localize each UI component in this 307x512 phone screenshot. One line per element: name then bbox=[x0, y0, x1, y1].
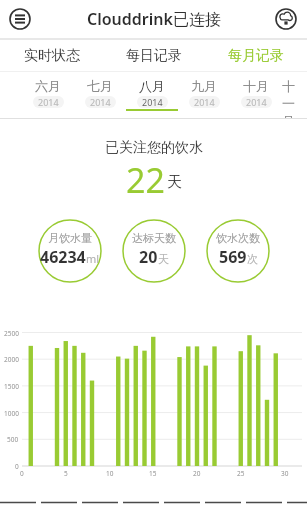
staticText: 0 bbox=[15, 462, 19, 471]
staticText: 10 bbox=[106, 469, 114, 478]
staticText: ml bbox=[86, 251, 100, 266]
staticText: 达标天数 bbox=[132, 231, 176, 245]
staticText: 15 bbox=[149, 469, 157, 478]
staticText: 2000 bbox=[4, 355, 19, 364]
button[interactable] bbox=[9, 8, 31, 30]
button[interactable]: 九月 bbox=[178, 72, 230, 109]
staticText: 每月记录 bbox=[228, 47, 284, 65]
staticText: 八月 bbox=[139, 78, 165, 94]
staticText: 每日记录 bbox=[126, 47, 182, 65]
staticText: 月饮水量 bbox=[48, 231, 92, 245]
staticText: 30 bbox=[281, 469, 289, 478]
staticText: 2500 bbox=[4, 329, 19, 338]
staticText: 1500 bbox=[4, 382, 19, 391]
staticText: Clouddrink已连接 bbox=[87, 8, 221, 30]
button[interactable]: 六月 bbox=[22, 72, 74, 109]
staticText: 46234 bbox=[40, 246, 86, 268]
staticText: 十月 bbox=[243, 78, 269, 94]
button[interactable] bbox=[275, 8, 297, 30]
staticText: 饮水次数 bbox=[216, 231, 260, 245]
button[interactable]: 八月 bbox=[126, 72, 178, 111]
staticText: 六月 bbox=[35, 78, 61, 94]
button[interactable]: 每日记录 bbox=[103, 40, 205, 71]
button[interactable]: 十月 bbox=[230, 72, 282, 109]
button[interactable]: 饮水次数 bbox=[206, 219, 270, 283]
button[interactable]: 十一月 bbox=[282, 72, 307, 118]
staticText: 2014 bbox=[142, 96, 163, 108]
button[interactable]: 每月记录 bbox=[205, 40, 307, 71]
staticText: 25 bbox=[237, 469, 245, 478]
staticText: 1000 bbox=[4, 409, 19, 418]
staticText: 22 bbox=[126, 157, 165, 199]
button[interactable]: 七月 bbox=[74, 72, 126, 109]
staticText: 十一月 bbox=[282, 78, 307, 118]
staticText: 5 bbox=[64, 469, 68, 478]
button[interactable]: 达标天数 bbox=[122, 219, 186, 283]
button[interactable]: 实时状态 bbox=[0, 40, 103, 71]
staticText: 2014 bbox=[38, 96, 59, 108]
staticText: 实时状态 bbox=[24, 47, 80, 65]
staticText: 20 bbox=[193, 469, 201, 478]
staticText: 天 bbox=[167, 173, 182, 192]
staticText: 天 bbox=[158, 252, 169, 266]
staticText: 2014 bbox=[194, 96, 215, 108]
staticText: 九月 bbox=[191, 78, 217, 94]
staticText: 500 bbox=[7, 435, 19, 444]
staticText: 已关注您的饮水 bbox=[105, 139, 203, 157]
staticText: 569 bbox=[219, 246, 247, 268]
staticText: 次 bbox=[247, 252, 258, 266]
staticText: 2014 bbox=[246, 96, 267, 108]
staticText: 0 bbox=[20, 469, 24, 478]
staticText: 2014 bbox=[90, 96, 111, 108]
staticText: 七月 bbox=[87, 78, 113, 94]
staticText: 20 bbox=[139, 246, 158, 268]
button[interactable]: 月饮水量 bbox=[38, 219, 102, 283]
